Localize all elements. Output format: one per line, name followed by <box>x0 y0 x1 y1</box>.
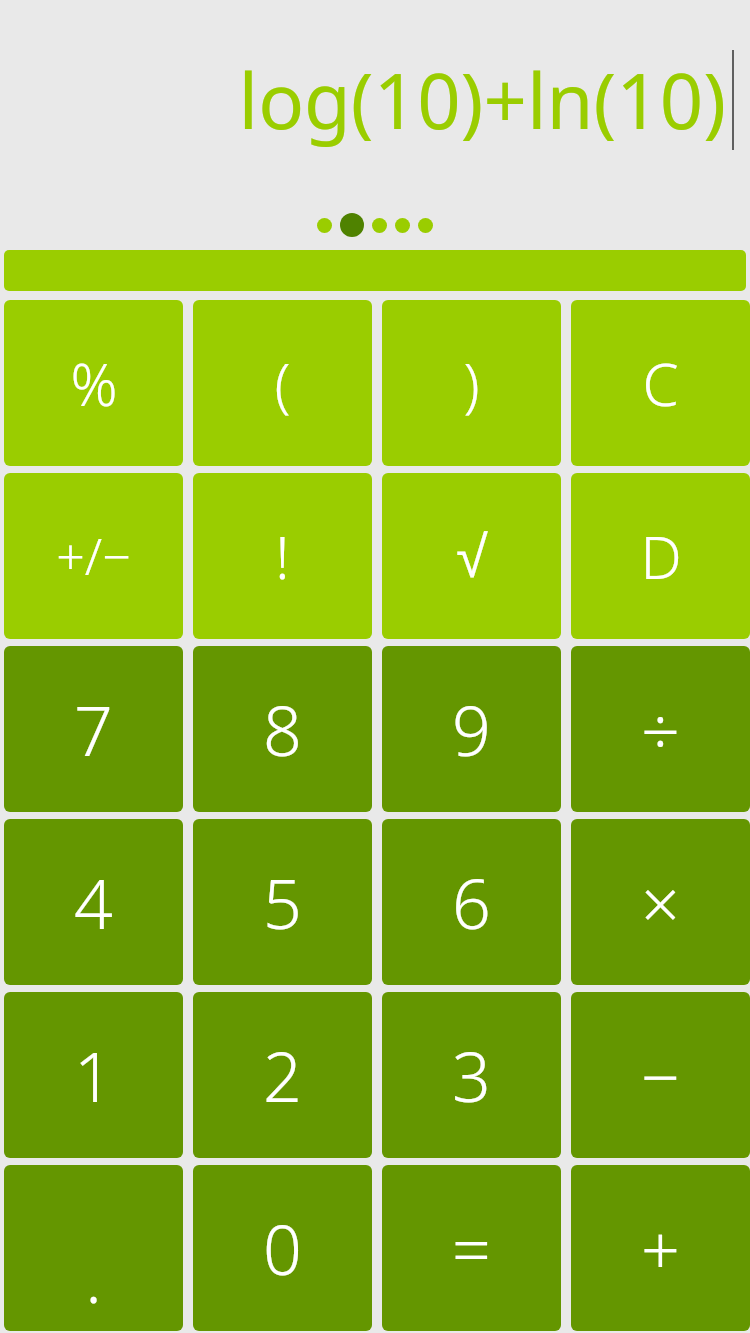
button[interactable]: ÷ <box>571 646 750 812</box>
button[interactable]: . <box>4 1165 183 1331</box>
button[interactable]: 9 <box>382 646 561 812</box>
button[interactable]: 5 <box>193 819 372 985</box>
button[interactable]: √ <box>382 473 561 639</box>
staticText: 8 <box>263 683 302 776</box>
button[interactable]: 6 <box>382 819 561 985</box>
staticText: 1 <box>74 1029 113 1122</box>
staticText: √ <box>456 524 488 589</box>
staticText: 4 <box>74 856 113 949</box>
staticText: ) <box>463 344 480 423</box>
button[interactable]: ) <box>382 300 561 466</box>
staticText: × <box>641 856 680 949</box>
staticText: . <box>85 1230 102 1323</box>
button[interactable]: Expression history bar <box>4 250 746 291</box>
staticText: 0 <box>263 1202 302 1295</box>
staticText: +/− <box>56 522 131 590</box>
staticText: ÷ <box>641 683 680 776</box>
staticText: + <box>641 1202 680 1295</box>
staticText: D <box>640 517 682 596</box>
staticText: 3 <box>452 1029 491 1122</box>
staticText: C <box>642 344 679 423</box>
staticText: = <box>452 1202 491 1295</box>
staticText: 2 <box>263 1029 302 1122</box>
button[interactable]: 0 <box>193 1165 372 1331</box>
button[interactable]: +/− <box>4 473 183 639</box>
button[interactable]: × <box>571 819 750 985</box>
staticText: % <box>70 344 118 423</box>
button[interactable]: 7 <box>4 646 183 812</box>
button[interactable]: = <box>382 1165 561 1331</box>
button[interactable]: ( <box>193 300 372 466</box>
staticText: 6 <box>452 856 491 949</box>
staticText: ( <box>274 344 291 423</box>
button[interactable]: 1 <box>4 992 183 1158</box>
button[interactable]: 2 <box>193 992 372 1158</box>
staticText: ! <box>275 517 290 596</box>
staticText: 7 <box>74 683 113 776</box>
button[interactable]: + <box>571 1165 750 1331</box>
button[interactable]: % <box>4 300 183 466</box>
button[interactable]: D <box>571 473 750 639</box>
staticText: 9 <box>452 683 491 776</box>
staticText: − <box>641 1029 680 1122</box>
staticText: 5 <box>263 856 302 949</box>
button[interactable]: ! <box>193 473 372 639</box>
button[interactable]: 4 <box>4 819 183 985</box>
button[interactable]: 3 <box>382 992 561 1158</box>
button[interactable]: 8 <box>193 646 372 812</box>
button[interactable]: C <box>571 300 750 466</box>
button[interactable]: − <box>571 992 750 1158</box>
staticText: log(10)+ln(10) <box>238 48 726 152</box>
